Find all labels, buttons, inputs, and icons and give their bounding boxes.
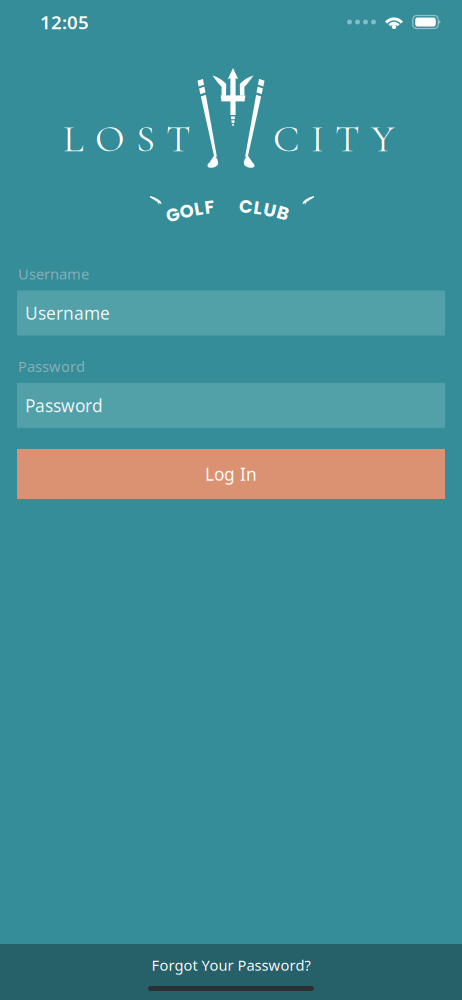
staticText: U	[263, 197, 276, 223]
staticText: F	[204, 195, 214, 220]
staticText: O	[179, 199, 193, 224]
button[interactable]: Log In	[17, 449, 445, 499]
button[interactable]: Password	[17, 383, 445, 428]
staticText: LOST	[63, 116, 191, 162]
staticText: Username	[18, 264, 89, 283]
staticText: 12:05	[40, 10, 89, 34]
staticText: B	[277, 201, 289, 226]
staticText: L	[253, 195, 262, 221]
button[interactable]: Username	[17, 290, 445, 335]
staticText: L	[194, 196, 203, 221]
staticText: Username	[25, 301, 110, 324]
staticText: C	[239, 194, 253, 219]
staticText: G	[166, 202, 180, 228]
staticText: CITY	[273, 116, 395, 162]
button[interactable]: Forgot Your Password?	[0, 944, 462, 986]
staticText: Log In	[205, 462, 257, 485]
staticText: Password	[18, 356, 85, 376]
staticText: Forgot Your Password?	[151, 955, 310, 975]
staticText: Password	[25, 394, 103, 417]
